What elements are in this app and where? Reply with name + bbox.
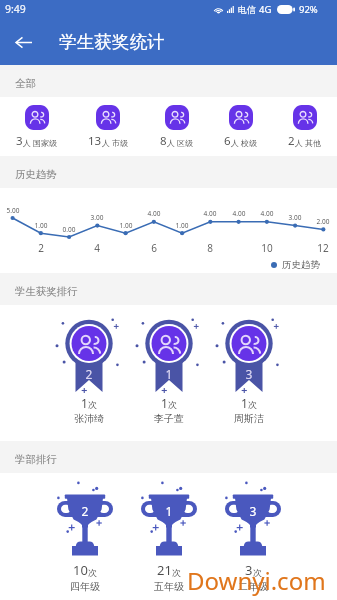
staticText: 历史趋势 (282, 259, 320, 271)
staticText: 2 (288, 133, 295, 149)
staticText: 历史趋势 (15, 168, 57, 181)
staticText: 人 (231, 138, 239, 148)
staticText: 4.00 (256, 209, 278, 218)
button[interactable]: 1 (129, 305, 209, 425)
staticText: 次 (172, 567, 181, 578)
staticText: 8 (200, 241, 220, 255)
staticText: 2.00 (312, 217, 334, 226)
staticText: 4.00 (228, 209, 250, 218)
staticText: 6 (144, 241, 164, 255)
staticText: 学生获奖统计 (59, 31, 165, 53)
staticText: 0.00 (58, 225, 80, 234)
staticText: 次 (88, 399, 97, 410)
staticText: 五年级 (154, 580, 184, 593)
staticText: 1 (161, 395, 168, 411)
staticText: 四年级 (70, 580, 100, 593)
staticText: 人 (295, 138, 303, 148)
staticText: 1.00 (171, 221, 193, 230)
staticText: 国家级 (33, 138, 57, 148)
staticText: 人 (102, 138, 110, 148)
staticText: 次 (88, 567, 97, 578)
staticText: 10 (73, 561, 88, 579)
staticText: 8 (160, 133, 167, 149)
staticText: 4.00 (143, 209, 165, 218)
button[interactable]: Back (5, 24, 41, 60)
staticText: 人 (23, 138, 31, 148)
staticText: 次 (168, 399, 177, 410)
staticText: 3 (16, 133, 23, 149)
staticText: 1.00 (115, 221, 137, 230)
staticText: 二年级 (238, 580, 268, 593)
staticText: 1 (81, 395, 88, 411)
staticText: 21 (157, 561, 172, 579)
staticText: 全部 (15, 77, 36, 90)
staticText: 6 (224, 133, 231, 149)
button[interactable]: 8 (160, 105, 193, 149)
staticText: 92% (299, 3, 318, 16)
staticText: 1.00 (30, 221, 52, 230)
staticText: 次 (253, 567, 262, 578)
button[interactable]: 1 (127, 473, 211, 593)
staticText: 12 (313, 241, 333, 255)
staticText: 李子萱 (154, 412, 184, 425)
button[interactable]: 3 (16, 105, 57, 149)
staticText: 人 (167, 138, 175, 148)
staticText: 2 (43, 503, 127, 519)
staticText: Downyi.com (187, 564, 326, 597)
button[interactable]: 3 (209, 305, 289, 425)
button[interactable]: 2 (288, 105, 321, 149)
staticText: 3 (211, 503, 295, 519)
staticText: 9:49 (5, 2, 26, 16)
button[interactable]: 2 (49, 305, 129, 425)
staticText: 市级 (112, 138, 128, 148)
staticText: 其他 (305, 138, 321, 148)
staticText: 2 (49, 366, 129, 382)
staticText: 4.00 (199, 209, 221, 218)
staticText: 4G (259, 3, 272, 16)
staticText: 3.00 (86, 213, 108, 222)
staticText: 次 (248, 399, 257, 410)
button[interactable]: 6 (224, 105, 257, 149)
staticText: 10 (257, 241, 277, 255)
staticText: 3 (245, 561, 253, 579)
staticText: 1 (127, 503, 211, 519)
staticText: 1 (129, 366, 209, 382)
staticText: 5.00 (2, 206, 24, 215)
staticText: 学部排行 (15, 453, 57, 466)
staticText: 13 (88, 133, 102, 149)
staticText: 张沛绮 (74, 412, 104, 425)
staticText: 学生获奖排行 (15, 285, 78, 298)
staticText: 4 (87, 241, 107, 255)
button[interactable]: 2 (43, 473, 127, 593)
staticText: 校级 (241, 138, 257, 148)
staticText: 1 (241, 395, 248, 411)
staticText: 电信 (238, 4, 256, 15)
staticText: 周斯洁 (234, 412, 264, 425)
staticText: 2 (31, 241, 51, 255)
staticText: 区级 (177, 138, 193, 148)
staticText: 3 (209, 366, 289, 382)
staticText: 3.00 (284, 213, 306, 222)
button[interactable]: 13 (88, 105, 128, 149)
button[interactable]: 3 (211, 473, 295, 593)
